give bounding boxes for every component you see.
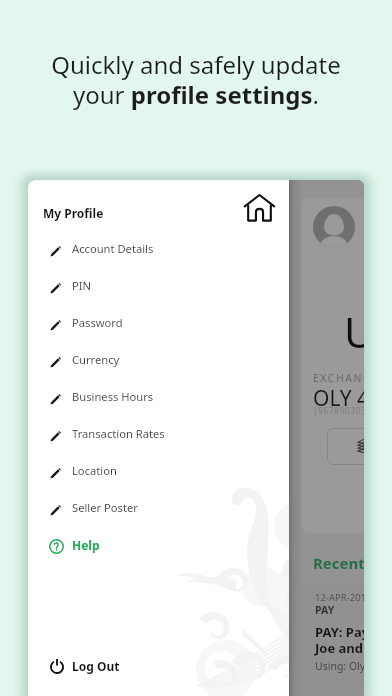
button[interactable]: Seller Poster — [28, 489, 289, 526]
staticText: Using: OlyCash — [315, 659, 364, 673]
button[interactable]: Account Details — [28, 230, 289, 267]
staticText: Transaction Rates — [72, 426, 165, 441]
button[interactable]: Transaction Rates — [28, 415, 289, 452]
button[interactable]: Location — [28, 452, 289, 489]
staticText: Location — [72, 463, 117, 478]
button[interactable]: Home — [241, 195, 277, 231]
button[interactable]: Log Out — [28, 647, 289, 684]
staticText: PAY — [315, 603, 335, 617]
button[interactable]: PIN — [28, 267, 289, 304]
button[interactable]: Password — [28, 304, 289, 341]
staticText: Log Out — [72, 658, 120, 674]
staticText: Currency — [72, 352, 120, 367]
button[interactable]: Send money — [327, 428, 364, 465]
staticText: |5678903033 — [313, 405, 364, 416]
staticText: OLY 480.00 — [313, 384, 364, 413]
staticText: PAY: Payment to Joe and Jane — [315, 623, 364, 656]
staticText: Quickly and safely update your profile s… — [44, 48, 348, 111]
staticText: PIN — [72, 278, 92, 293]
button[interactable]: Currency — [28, 341, 289, 378]
staticText: Recent Activity — [313, 553, 364, 573]
staticText: 12-APR-2019 10:17 — [315, 591, 364, 604]
staticText: Ush — [344, 303, 364, 360]
staticText: Account Details — [72, 241, 154, 256]
staticText: EXCHANGE RATE — [313, 371, 364, 385]
button[interactable]: Business Hours — [28, 378, 289, 415]
staticText: Help — [72, 537, 100, 553]
staticText: Seller Poster — [72, 500, 138, 515]
staticText: Business Hours — [72, 389, 154, 404]
staticText: My Profile — [43, 205, 104, 221]
staticText: Password — [72, 315, 123, 330]
button[interactable]: Help — [28, 526, 289, 563]
